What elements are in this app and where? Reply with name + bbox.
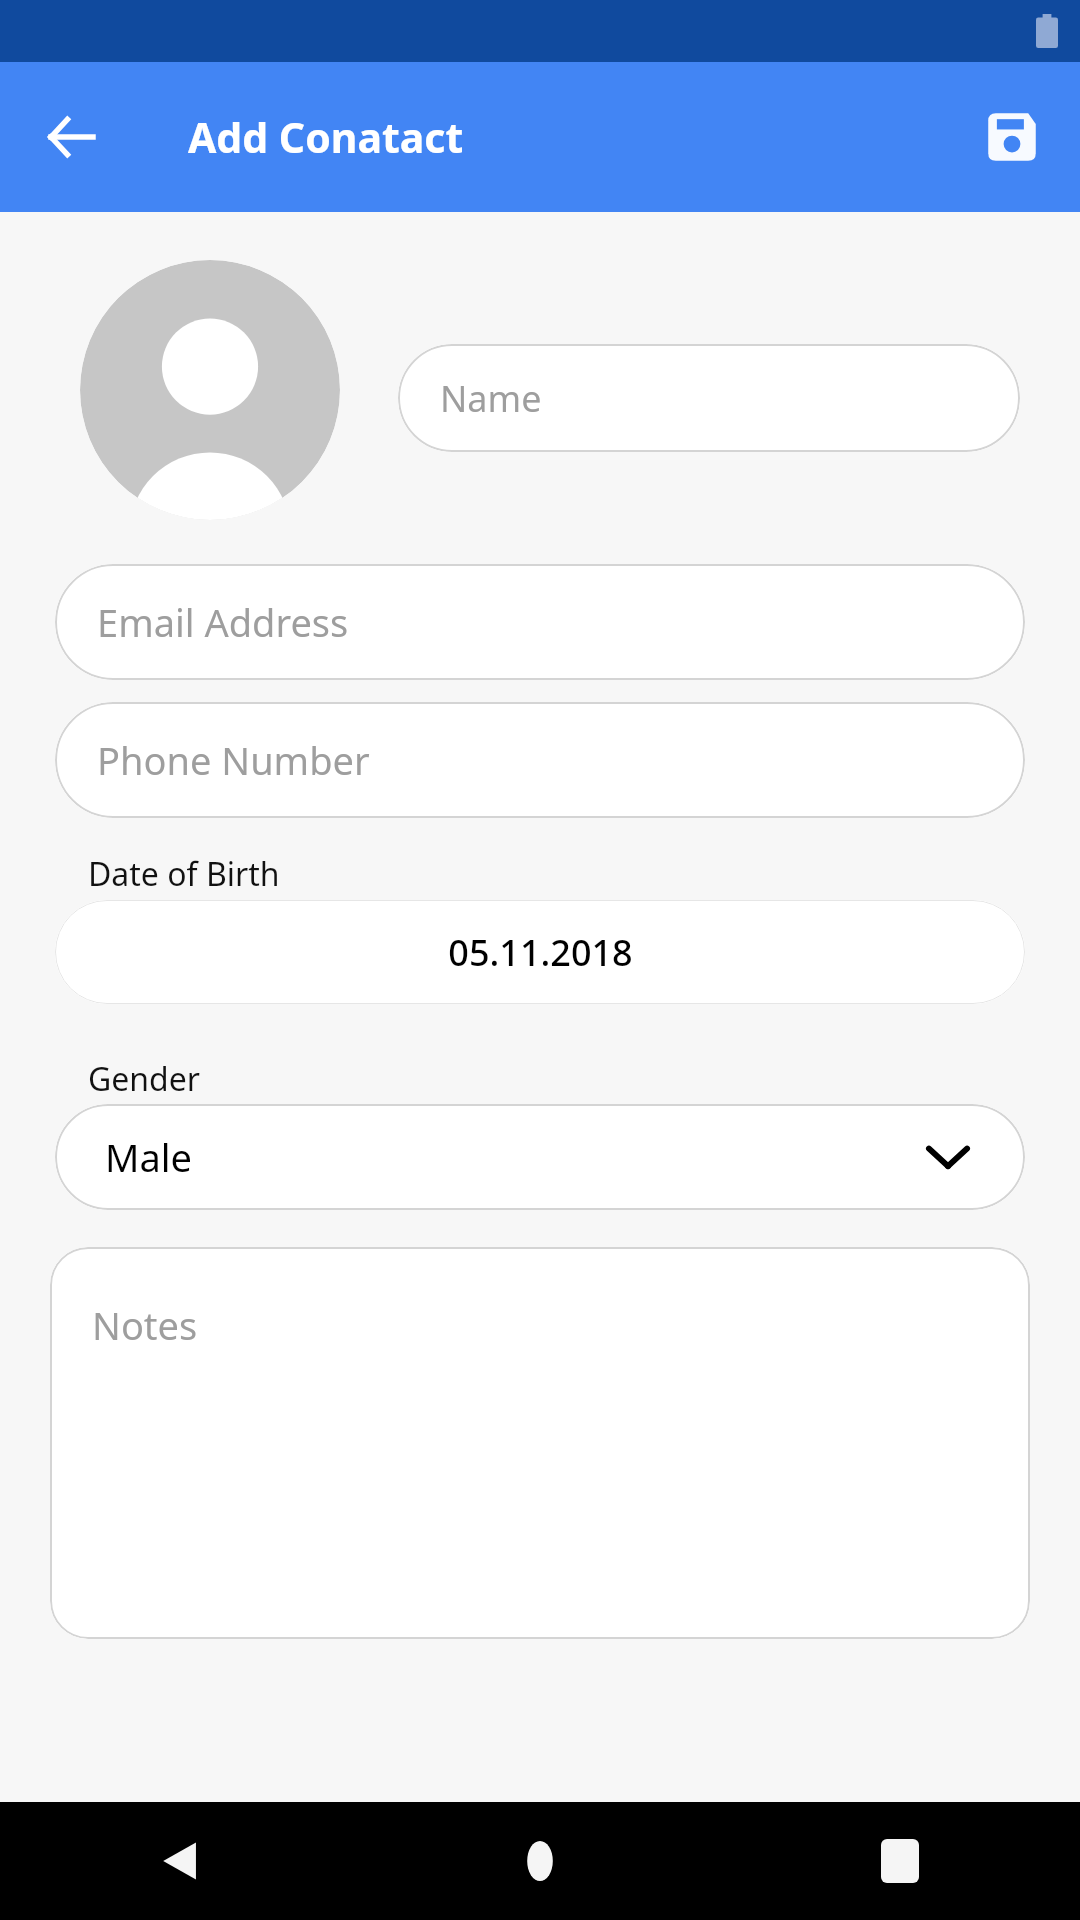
button[interactable]: Save — [968, 93, 1056, 181]
button[interactable]: Back — [28, 93, 116, 181]
staticText: Notes — [92, 1299, 198, 1351]
button[interactable]: Back — [0, 1802, 360, 1920]
staticText: Add Conatact — [188, 109, 464, 165]
button[interactable]: 05.11.2018 — [55, 900, 1025, 1004]
button[interactable]: Male — [55, 1104, 1025, 1210]
staticText: 05.11.2018 — [448, 928, 633, 977]
button[interactable]: Notes — [50, 1247, 1030, 1639]
staticText: Gender — [88, 1057, 201, 1101]
staticText: Date of Birth — [88, 852, 280, 896]
button[interactable]: Phone Number — [55, 702, 1025, 818]
button[interactable]: Email Address — [55, 564, 1025, 680]
staticText: Phone Number — [97, 734, 370, 786]
staticText: Male — [105, 1131, 193, 1183]
button[interactable]: Name — [398, 344, 1020, 452]
button[interactable]: Home — [360, 1802, 720, 1920]
button[interactable]: Recent apps — [720, 1802, 1080, 1920]
staticText: Email Address — [97, 596, 349, 648]
staticText: Name — [440, 374, 542, 423]
